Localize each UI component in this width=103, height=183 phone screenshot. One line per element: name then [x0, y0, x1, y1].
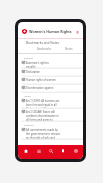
staticText: Notes	[24, 94, 31, 97]
button[interactable]: Art 1 UDHR: All humans are	[18, 98, 83, 109]
staticText: A woman's right to	[26, 61, 49, 65]
button[interactable]: Bookmarks	[74, 29, 80, 35]
button[interactable]: Human rights of women	[18, 77, 83, 85]
button[interactable]: Discrimination against	[18, 85, 83, 93]
staticText: Progress	[24, 123, 34, 126]
button[interactable]: Declaration	[18, 69, 83, 77]
staticText: on the right of girls and	[26, 136, 55, 139]
button[interactable]: All commitments made by	[18, 127, 83, 140]
button[interactable]: Settings	[71, 146, 80, 155]
staticText: all forms and agree to	[26, 118, 53, 121]
staticText: Bookmarks	[37, 47, 52, 51]
staticText: equality	[26, 65, 36, 68]
button[interactable]: Bookmarks	[58, 146, 67, 155]
staticText: Art 2 CEDAW: States will	[26, 110, 55, 114]
staticText: Equality	[24, 56, 33, 59]
staticText: the governments to remove	[26, 132, 60, 136]
staticText: All commitments made by	[26, 128, 58, 132]
button[interactable]: Search	[46, 146, 55, 155]
button[interactable]: Home	[21, 146, 30, 155]
button[interactable]: Contents	[34, 146, 43, 155]
staticText: born free and equal in all	[26, 103, 57, 107]
staticText: Declaration	[26, 70, 40, 74]
staticText: Human rights of women	[26, 78, 56, 82]
button[interactable]: A woman's right to	[18, 60, 83, 69]
staticText: Bookmarks and Notes	[26, 41, 60, 45]
staticText: Discrimination against	[26, 86, 54, 90]
button[interactable]: Art 2 CEDAW: States will	[18, 109, 83, 122]
staticText: Declaration of Nations	[26, 107, 54, 108]
staticText: Notes	[65, 47, 73, 51]
staticText: Art 1 UDHR: All humans are	[26, 99, 60, 103]
staticText: Women's Human Rights	[29, 29, 72, 34]
staticText: condemn discrimination in	[26, 114, 59, 118]
